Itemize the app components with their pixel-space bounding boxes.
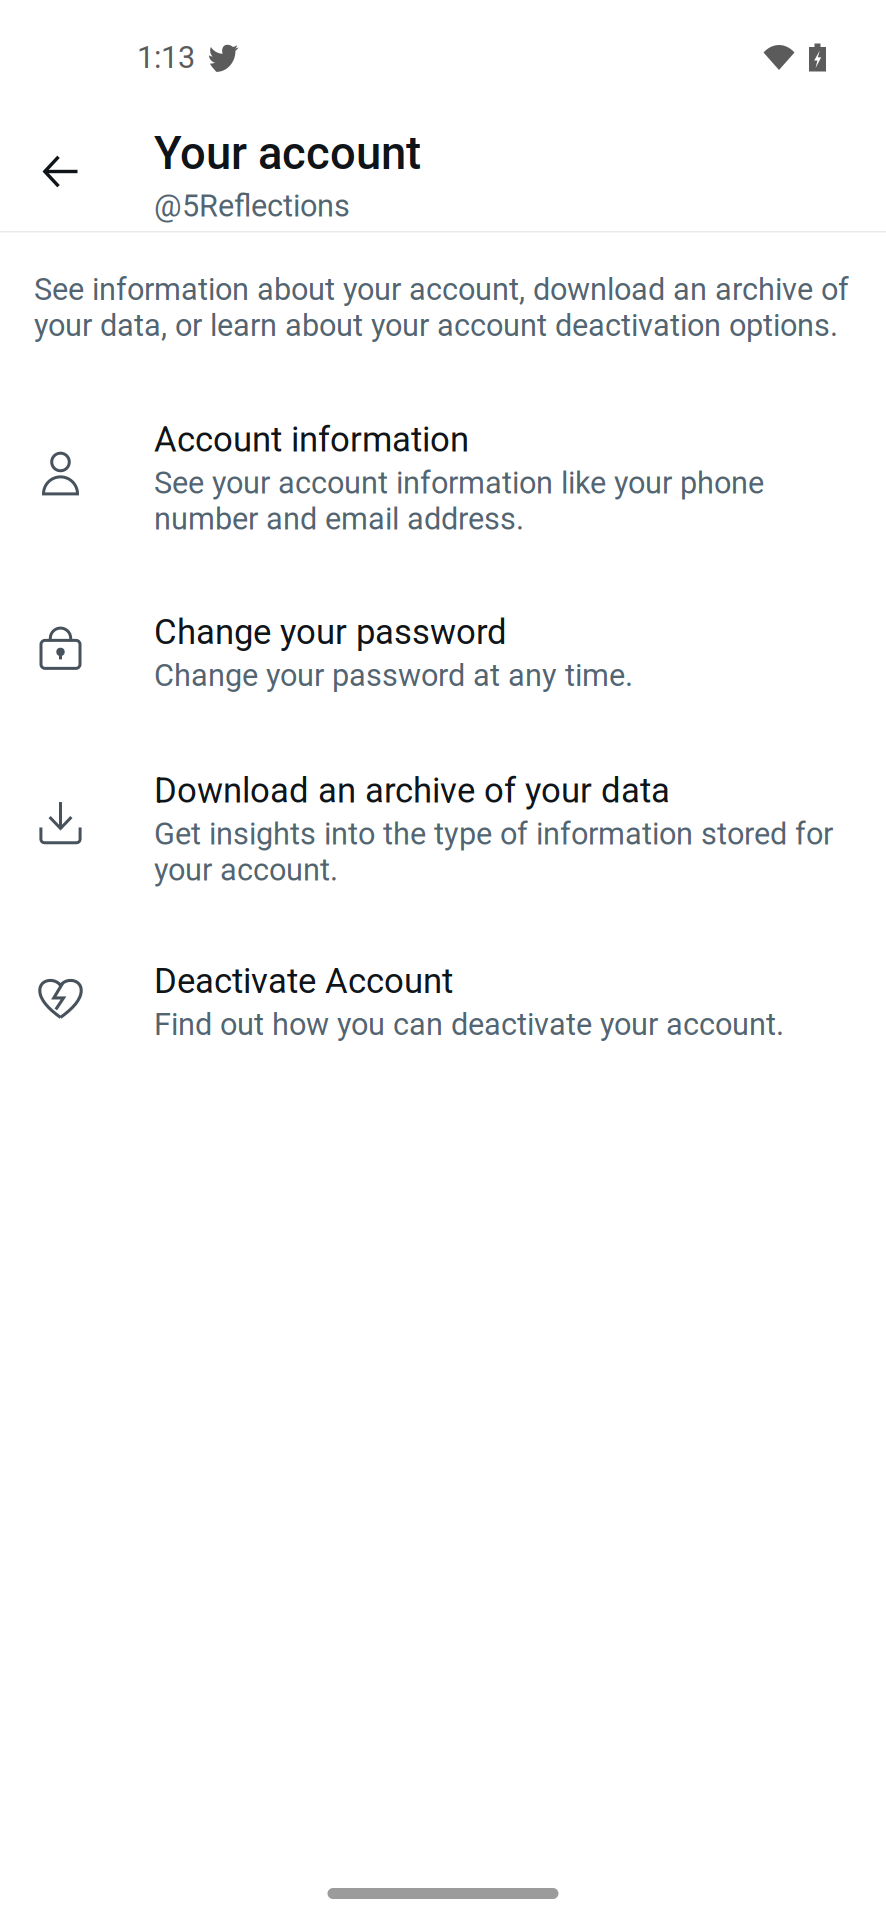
- staticText: Change your password: [154, 612, 507, 652]
- staticText: Your account: [154, 127, 421, 180]
- staticText: Change your password at any time.: [154, 657, 633, 693]
- staticText: @5Reflections: [154, 188, 350, 224]
- staticText: Deactivate Account: [154, 961, 453, 1001]
- staticText: See information about your account, down…: [34, 271, 849, 343]
- button[interactable]: Download an archive of your data: [0, 732, 886, 924]
- staticText: Find out how you can deactivate your acc…: [154, 1007, 784, 1042]
- staticText: 1:13: [137, 39, 195, 75]
- staticText: Download an archive of your data: [154, 770, 670, 811]
- button[interactable]: Change your password: [0, 574, 886, 732]
- staticText: Get insights into the type of informatio…: [154, 816, 833, 888]
- button[interactable]: Account information: [0, 381, 886, 574]
- staticText: See your account information like your p…: [154, 465, 764, 537]
- staticText: Account information: [154, 419, 469, 460]
- button[interactable]: Deactivate Account: [0, 924, 886, 1080]
- button[interactable]: Back: [0, 96, 121, 231]
